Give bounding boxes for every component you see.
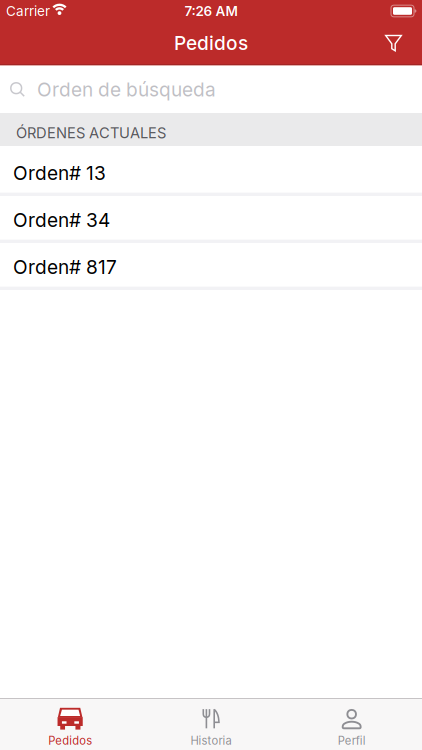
button[interactable]: Pedidos — [0, 699, 141, 747]
staticText: Carrier — [6, 3, 50, 19]
button[interactable]: Orden# 13 — [0, 146, 422, 193]
button[interactable] — [385, 22, 422, 63]
button[interactable]: Perfil — [281, 699, 422, 747]
staticText: Orden de búsqueda — [37, 78, 216, 101]
staticText: 7:26 AM — [184, 3, 237, 19]
staticText: Perfil — [338, 734, 366, 747]
staticText: ÓRDENES ACTUALES — [16, 124, 166, 142]
staticText: Orden# 817 — [13, 255, 117, 279]
staticText: Pedidos — [48, 734, 92, 747]
button[interactable]: Historia — [141, 699, 281, 747]
staticText: Historia — [190, 734, 231, 747]
button[interactable]: Orden# 817 — [0, 240, 422, 287]
staticText: Orden# 13 — [13, 161, 106, 185]
button[interactable]: Orden de búsqueda — [0, 66, 422, 113]
staticText: Orden# 34 — [13, 208, 110, 232]
button[interactable]: Orden# 34 — [0, 193, 422, 240]
staticText: Pedidos — [174, 31, 248, 55]
